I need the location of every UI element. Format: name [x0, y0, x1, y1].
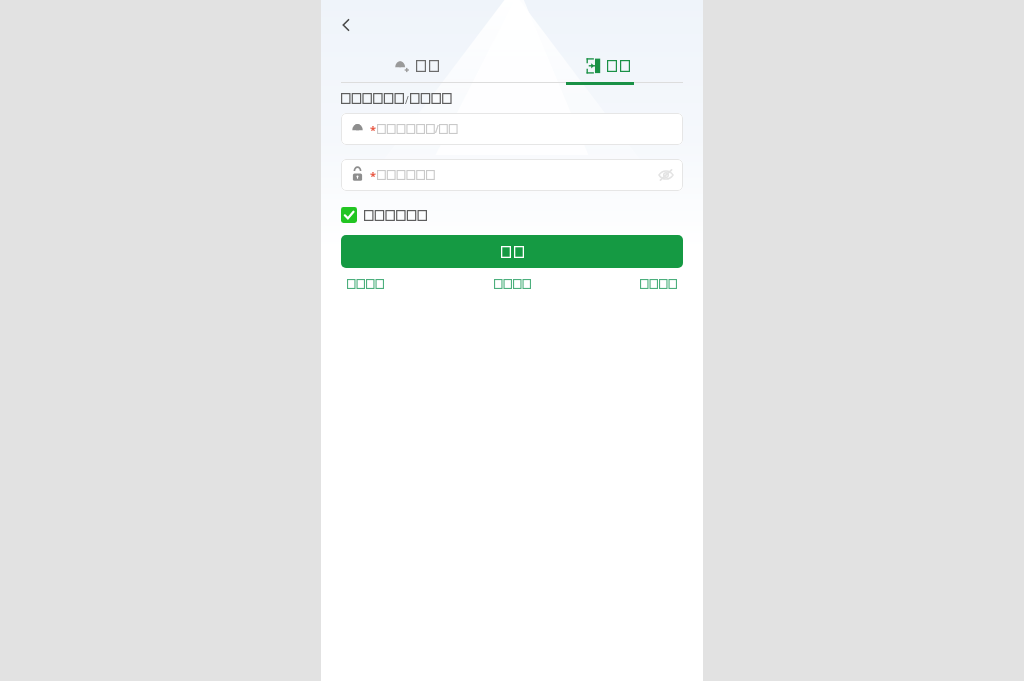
button[interactable]: [341, 276, 390, 292]
staticText: *: [370, 122, 376, 137]
button[interactable]: [341, 207, 427, 223]
button[interactable]: [634, 276, 683, 292]
staticText: *: [370, 168, 376, 183]
button[interactable]: Username: [341, 113, 683, 145]
button[interactable]: [512, 50, 703, 82]
button[interactable]: [321, 50, 512, 82]
button[interactable]: Password: [341, 159, 683, 191]
button[interactable]: Back: [331, 10, 361, 40]
staticText: /: [435, 122, 439, 136]
button[interactable]: [488, 276, 537, 292]
button[interactable]: Toggle password visibility: [652, 161, 680, 189]
button[interactable]: [341, 235, 683, 268]
staticText: /: [405, 93, 409, 107]
